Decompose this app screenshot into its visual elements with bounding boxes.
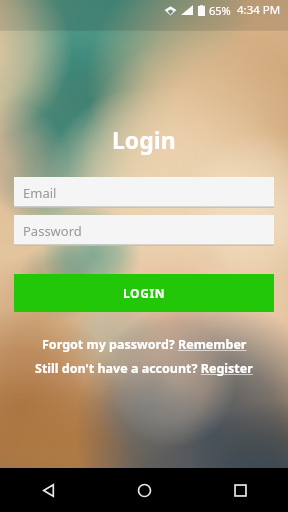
button[interactable]: Still don't have a account? Register	[0, 360, 288, 377]
button[interactable]: Recent apps	[192, 468, 288, 512]
button[interactable]: Forgot my password? Remember	[0, 336, 288, 353]
button[interactable]: LOGIN	[14, 274, 274, 312]
staticText: Still don't have a account? Register	[35, 360, 253, 377]
staticText: Email	[23, 184, 57, 202]
button[interactable]: Email	[14, 177, 274, 208]
staticText: LOGIN	[123, 285, 166, 301]
staticText: Login	[112, 124, 176, 155]
staticText: Forgot my password? Remember	[42, 336, 247, 353]
button[interactable]: Password	[14, 215, 274, 246]
staticText: 4:34 PM	[237, 2, 281, 18]
staticText: 65%	[209, 3, 231, 18]
staticText: Password	[23, 222, 82, 240]
button[interactable]: Home	[96, 468, 192, 512]
button[interactable]: Back	[0, 468, 96, 512]
